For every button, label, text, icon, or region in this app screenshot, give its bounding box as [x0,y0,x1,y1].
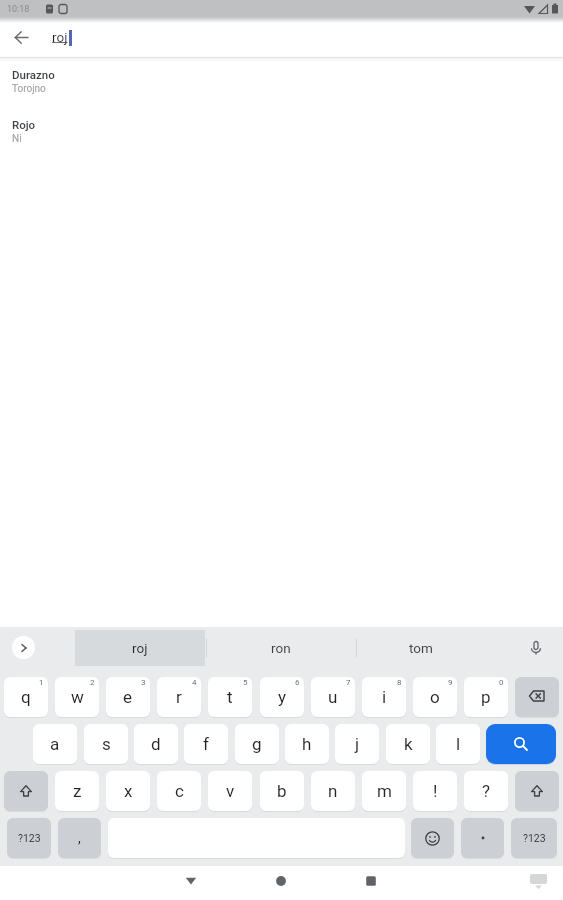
button[interactable] [486,724,556,764]
button[interactable]: m [362,771,406,811]
staticText: 7 [346,678,351,687]
button[interactable]: c [157,771,201,811]
button[interactable]: h [285,724,329,764]
staticText: 4 [192,678,197,687]
button[interactable]: ?123 [7,818,51,858]
button[interactable]: f [184,724,228,764]
button[interactable]: ? [464,771,508,811]
staticText: x [124,781,133,801]
button[interactable] [515,771,559,811]
button[interactable] [411,818,454,858]
button[interactable]: a [33,724,77,764]
staticText: ?123 [523,832,546,844]
button[interactable]: roj [75,630,205,666]
staticText: 2 [90,678,95,687]
button[interactable]: s [84,724,128,764]
staticText: Torojno [12,83,46,95]
staticText: l [456,734,461,754]
staticText: ! [433,781,438,801]
button[interactable]: d [134,724,178,764]
staticText: r [176,687,182,707]
staticText: v [226,781,235,801]
staticText: u [328,687,338,707]
staticText: h [302,734,312,754]
staticText: e [123,687,133,707]
staticText: d [151,734,161,754]
staticText: n [328,781,338,801]
staticText: 3 [141,678,146,687]
button[interactable]: x [106,771,150,811]
button[interactable]: n [311,771,355,811]
button[interactable]: i [362,677,406,717]
staticText: p [481,687,491,707]
button[interactable] [4,771,48,811]
button[interactable] [355,865,387,897]
button[interactable] [12,636,35,659]
staticText: q [21,687,31,707]
button[interactable]: j [335,724,379,764]
staticText: roj [132,640,148,656]
button[interactable]: z [55,771,99,811]
button[interactable]: p [464,677,508,717]
staticText: ?123 [18,832,41,844]
staticText: 0 [499,678,504,687]
staticText: 8 [397,678,402,687]
button[interactable] [522,634,550,662]
button[interactable] [265,865,297,897]
staticText: 9 [448,678,453,687]
button[interactable] [515,677,559,717]
button[interactable]: r [157,677,201,717]
button[interactable]: o [413,677,457,717]
button[interactable]: g [235,724,279,764]
staticText: ron [271,640,291,656]
staticText: Durazno [12,68,55,81]
staticText: Ni [12,133,22,145]
button[interactable]: ron [206,630,355,666]
staticText: f [203,734,209,754]
staticText: m [377,781,392,801]
staticText: roj [52,29,68,45]
button[interactable]: Rojo [0,112,563,162]
button[interactable] [6,22,36,52]
staticText: w [71,687,84,707]
staticText: s [102,734,111,754]
staticText: y [278,687,287,707]
button[interactable] [461,818,504,858]
staticText: j [355,734,360,754]
staticText: a [50,734,60,754]
button[interactable]: , [58,818,101,858]
button[interactable]: e [106,677,150,717]
button[interactable]: l [436,724,480,764]
staticText: g [252,734,262,754]
button[interactable]: b [260,771,304,811]
staticText: 10:18 [7,4,30,15]
button[interactable]: y [260,677,304,717]
button[interactable]: q [4,677,48,717]
button[interactable]: v [208,771,252,811]
staticText: 1 [39,678,44,687]
button[interactable]: w [55,677,99,717]
staticText: c [175,781,184,801]
staticText: t [227,687,233,707]
button[interactable]: ! [413,771,457,811]
staticText: tom [409,640,433,656]
staticText: , [78,830,81,846]
button[interactable]: tom [356,630,485,666]
button[interactable]: t [208,677,252,717]
staticText: k [404,734,413,754]
staticText: i [382,687,387,707]
staticText: 5 [243,678,248,687]
button[interactable] [175,865,207,897]
staticText: o [430,687,440,707]
staticText: z [73,781,82,801]
staticText: 6 [295,678,300,687]
button[interactable]: Durazno [0,62,563,112]
button[interactable]: ?123 [511,818,557,858]
button[interactable]: k [386,724,430,764]
staticText: Rojo [12,118,36,131]
staticText: b [277,781,287,801]
staticText: ? [482,781,491,801]
button[interactable]: u [311,677,355,717]
